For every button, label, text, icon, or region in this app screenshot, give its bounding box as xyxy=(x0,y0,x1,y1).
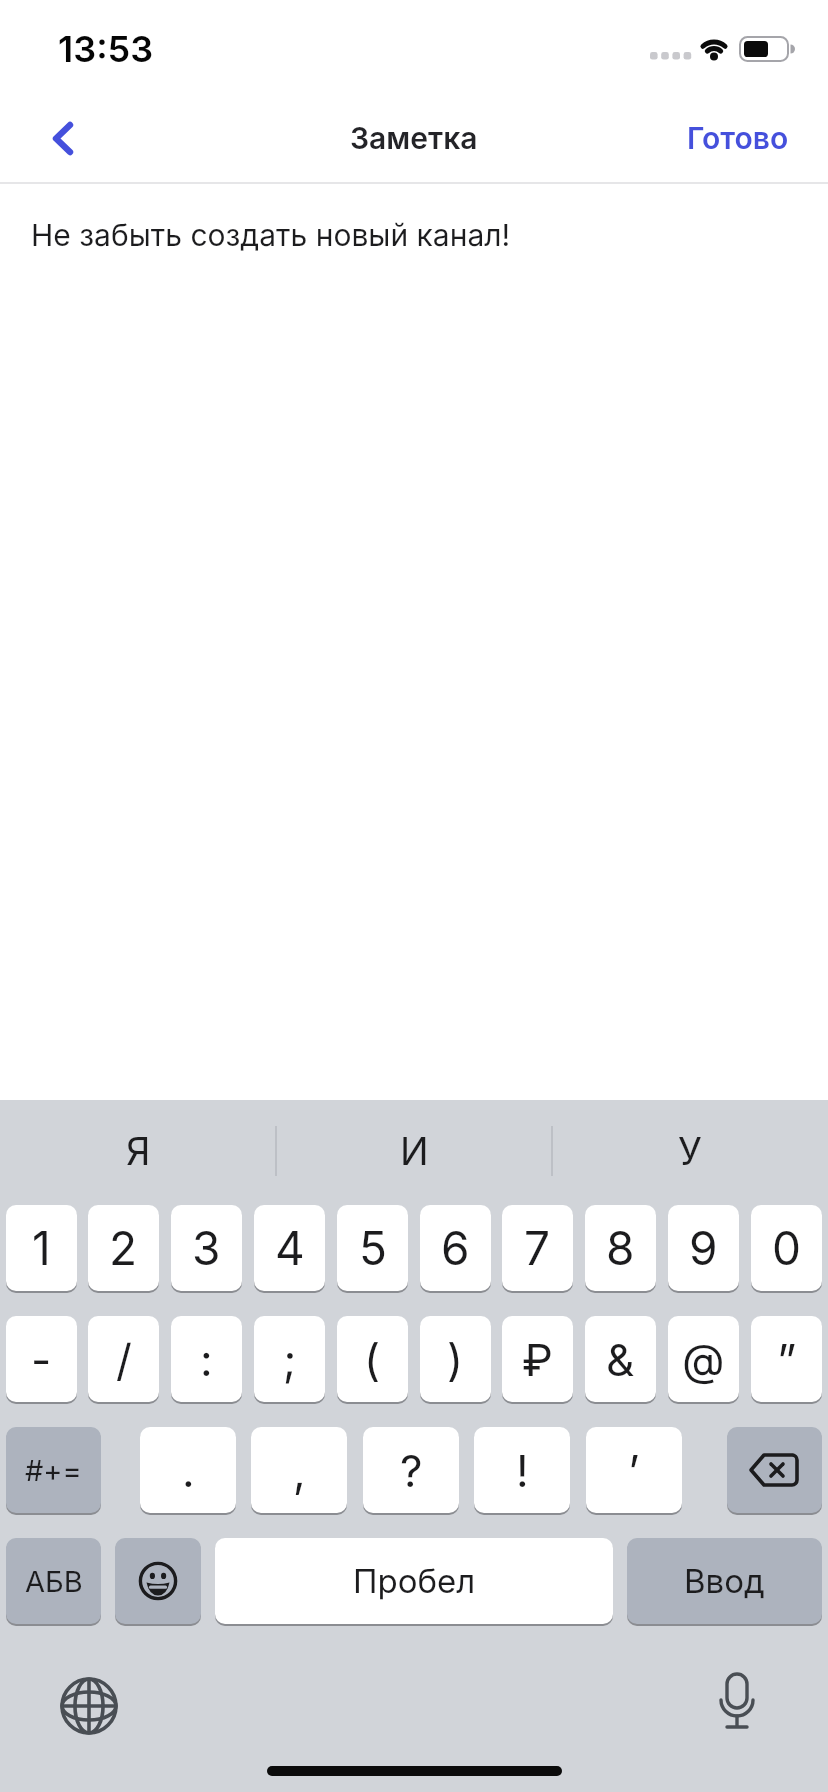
button[interactable]: Ввод xyxy=(627,1538,822,1624)
staticText: ( xyxy=(364,1333,381,1386)
staticText: #+= xyxy=(25,1453,82,1488)
button[interactable]: & xyxy=(585,1316,656,1402)
button[interactable]: ! xyxy=(474,1427,570,1513)
button[interactable]: 4 xyxy=(254,1205,325,1291)
button[interactable]: ’ xyxy=(586,1427,682,1513)
staticText: Заметка xyxy=(350,120,478,156)
staticText: 0 xyxy=(772,1220,802,1276)
staticText: ’ xyxy=(628,1444,640,1497)
button[interactable] xyxy=(115,1538,201,1624)
staticText: И xyxy=(400,1128,429,1174)
staticText: 3 xyxy=(192,1220,221,1276)
staticText: ) xyxy=(447,1333,464,1386)
button[interactable]: , xyxy=(251,1427,347,1513)
button[interactable]: 7 xyxy=(502,1205,573,1291)
staticText: Пробел xyxy=(353,1561,476,1601)
button[interactable]: : xyxy=(171,1316,242,1402)
staticText: ? xyxy=(400,1444,423,1497)
staticText: 9 xyxy=(689,1220,718,1276)
staticText: 5 xyxy=(359,1220,387,1276)
staticText: ; xyxy=(283,1333,297,1386)
button[interactable] xyxy=(727,1427,822,1513)
button[interactable]: ( xyxy=(337,1316,408,1402)
button[interactable]: 1 xyxy=(6,1205,77,1291)
staticText: У xyxy=(678,1128,702,1174)
staticText: 4 xyxy=(275,1220,305,1276)
staticText: , xyxy=(293,1444,306,1497)
button[interactable]: 2 xyxy=(88,1205,159,1291)
button[interactable]: . xyxy=(140,1427,236,1513)
button[interactable]: ” xyxy=(751,1316,822,1402)
button[interactable]: ; xyxy=(254,1316,325,1402)
button[interactable]: 9 xyxy=(668,1205,739,1291)
button[interactable]: У xyxy=(552,1108,828,1194)
button[interactable]: ) xyxy=(420,1316,491,1402)
button[interactable]: ₽ xyxy=(502,1316,573,1402)
button[interactable]: Готово xyxy=(664,112,794,164)
staticText: : xyxy=(200,1333,213,1386)
button[interactable]: Пробел xyxy=(215,1538,613,1624)
button[interactable]: 0 xyxy=(751,1205,822,1291)
staticText: / xyxy=(116,1333,132,1386)
staticText: 2 xyxy=(109,1220,138,1276)
button[interactable]: 5 xyxy=(337,1205,408,1291)
staticText: 7 xyxy=(524,1220,551,1276)
button[interactable]: - xyxy=(6,1316,77,1402)
button[interactable]: И xyxy=(276,1108,552,1194)
button[interactable] xyxy=(705,1672,769,1740)
staticText: 8 xyxy=(606,1220,635,1276)
button[interactable]: АБВ xyxy=(6,1538,101,1624)
staticText: & xyxy=(606,1333,635,1386)
staticText: ” xyxy=(777,1333,797,1386)
button[interactable] xyxy=(57,1674,121,1738)
staticText: АБВ xyxy=(25,1564,83,1599)
staticText: Ввод xyxy=(684,1561,765,1601)
staticText: Не забыть создать новый канал! xyxy=(31,217,511,253)
staticText: Я xyxy=(126,1128,151,1174)
staticText: ₽ xyxy=(522,1333,553,1386)
staticText: 13:53 xyxy=(58,27,154,71)
button[interactable]: 3 xyxy=(171,1205,242,1291)
button[interactable]: 8 xyxy=(585,1205,656,1291)
staticText: @ xyxy=(682,1333,725,1386)
staticText: . xyxy=(182,1444,195,1497)
staticText: 1 xyxy=(32,1220,51,1276)
button[interactable]: ? xyxy=(363,1427,459,1513)
staticText: ! xyxy=(516,1444,529,1497)
staticText: Готово xyxy=(687,120,789,156)
staticText: - xyxy=(31,1333,52,1386)
button[interactable]: @ xyxy=(668,1316,739,1402)
staticText: 6 xyxy=(441,1220,470,1276)
button[interactable]: / xyxy=(88,1316,159,1402)
button[interactable]: #+= xyxy=(6,1427,101,1513)
button[interactable]: Я xyxy=(0,1108,276,1194)
button[interactable]: 6 xyxy=(420,1205,491,1291)
button[interactable] xyxy=(36,108,96,168)
